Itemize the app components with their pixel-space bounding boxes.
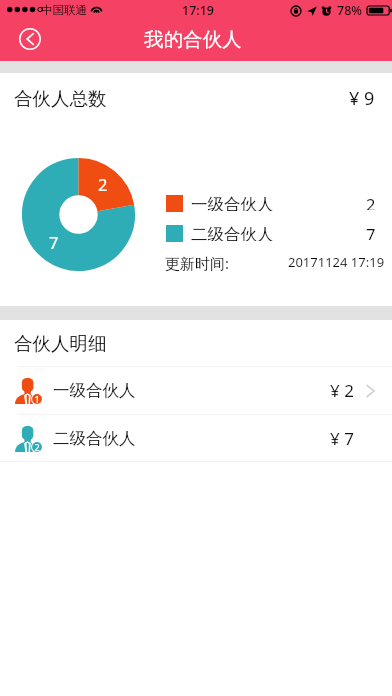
staticText: ¥ 2 <box>330 379 354 402</box>
staticText: 17:19 <box>182 2 215 19</box>
staticText: 2 <box>34 441 40 453</box>
staticText: 7 <box>49 231 59 253</box>
button[interactable]: 1 <box>0 367 392 414</box>
button[interactable]: Back <box>11 20 49 58</box>
staticText: 合伙人总数 <box>14 87 107 110</box>
staticText: 2 <box>366 193 376 210</box>
staticText: 一级合伙人 <box>191 194 274 211</box>
staticText: 更新时间: <box>165 253 230 273</box>
staticText: 一级合伙人 <box>53 380 136 401</box>
staticText: 二级合伙人 <box>191 224 274 241</box>
button[interactable]: 2 <box>0 415 392 461</box>
staticText: 我的合伙人 <box>144 27 242 52</box>
staticText: ¥ 7 <box>330 427 354 450</box>
staticText: 合伙人明细 <box>14 332 107 355</box>
staticText: ¥ 9 <box>349 86 375 111</box>
staticText: 1 <box>34 393 40 405</box>
staticText: 7 <box>366 223 376 240</box>
staticText: 2 <box>98 173 108 195</box>
staticText: 中国联通 <box>41 3 87 17</box>
staticText: 20171124 17:19 <box>288 253 385 271</box>
staticText: 二级合伙人 <box>53 428 136 449</box>
staticText: 78% <box>337 2 362 19</box>
